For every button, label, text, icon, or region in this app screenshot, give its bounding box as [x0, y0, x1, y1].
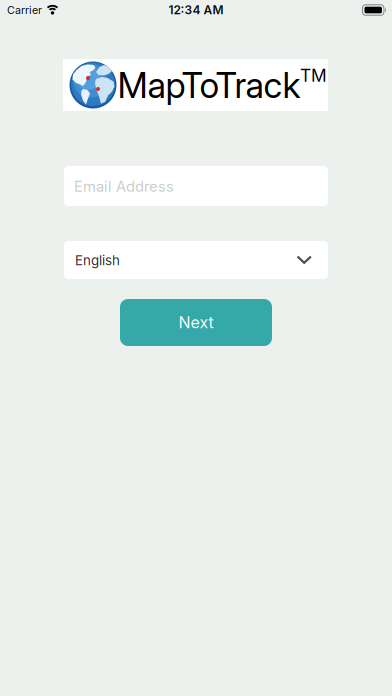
button[interactable]: Email Address [64, 166, 328, 206]
staticText: 12:34 AM [168, 3, 223, 17]
staticText: Next [178, 313, 213, 332]
staticText: Email Address [74, 178, 174, 195]
staticText: Carrier [7, 4, 42, 16]
button[interactable]: English [64, 241, 328, 279]
staticText: TM [300, 65, 327, 86]
button[interactable]: Next [120, 299, 272, 346]
staticText: English [75, 253, 120, 268]
staticText: MapToTrack [117, 65, 300, 106]
